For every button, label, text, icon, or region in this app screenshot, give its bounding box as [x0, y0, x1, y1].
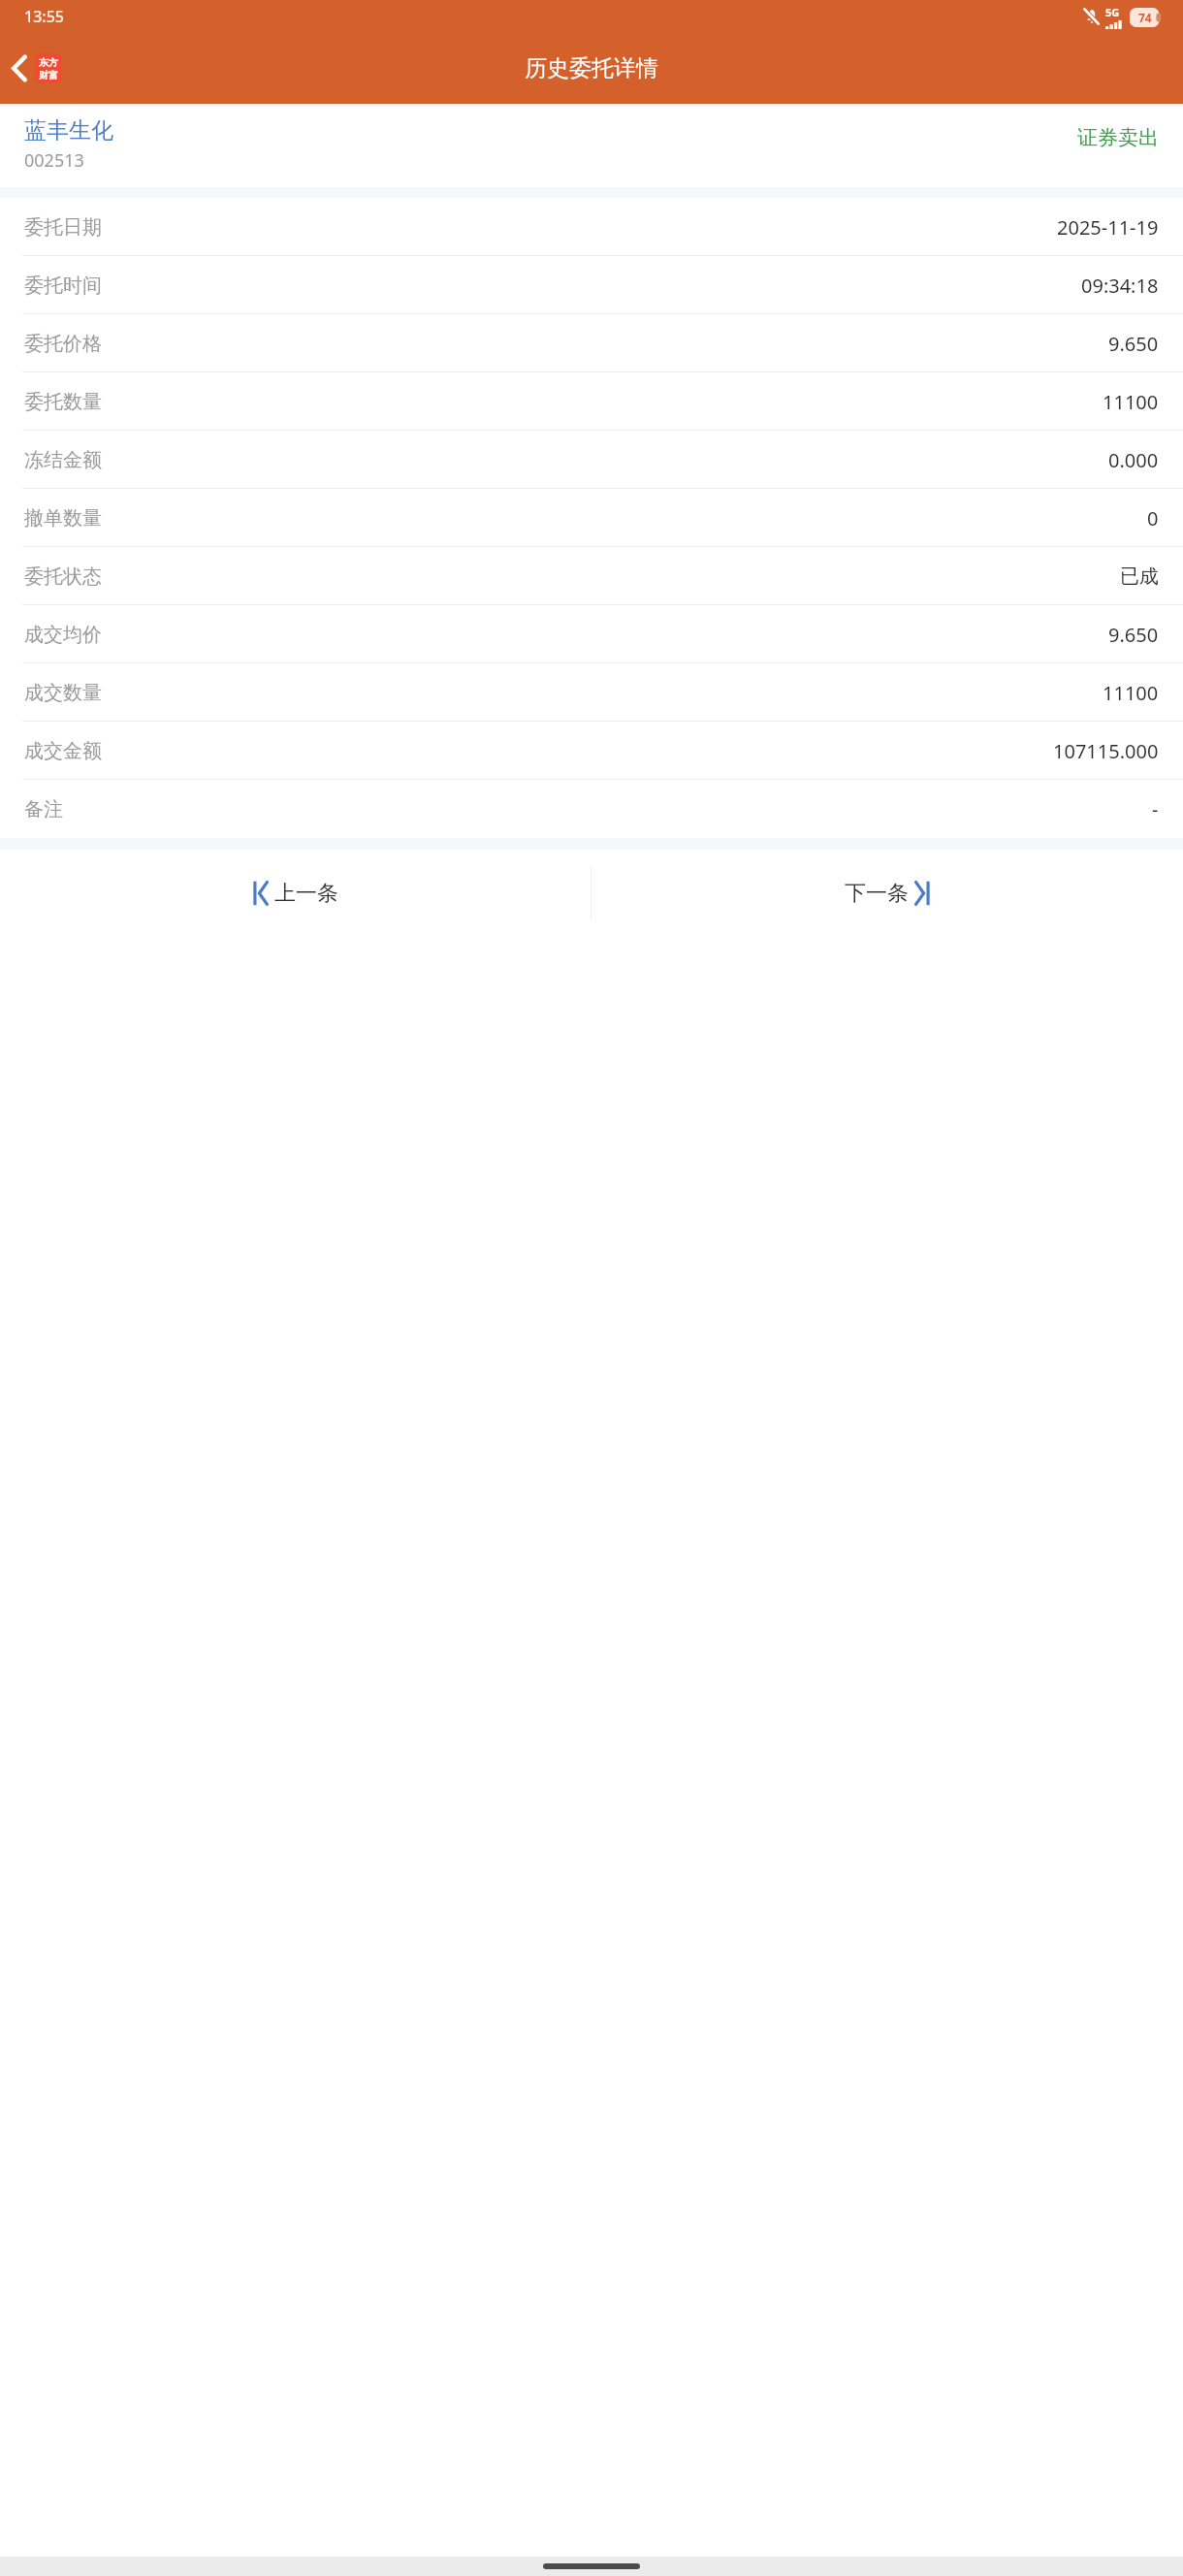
staticText: -	[1152, 796, 1159, 822]
staticText: 9.650	[1108, 331, 1159, 357]
staticText: 11100	[1103, 389, 1159, 415]
button[interactable]: 成交金额	[0, 722, 1183, 780]
button[interactable]: 委托价格	[0, 314, 1183, 372]
staticText: 0	[1147, 505, 1159, 531]
staticText: 成交数量	[24, 681, 102, 705]
staticText: 下一条	[845, 880, 909, 907]
staticText: 蓝丰生化	[24, 116, 113, 145]
staticText: 13:55	[24, 6, 64, 27]
button[interactable]: 委托数量	[0, 372, 1183, 431]
staticText: 107115.000	[1053, 738, 1159, 764]
button[interactable]: 下一条	[591, 866, 1183, 920]
staticText: 财富	[39, 69, 58, 81]
staticText: 上一条	[274, 880, 338, 907]
staticText: 撤单数量	[24, 506, 102, 531]
staticText: 成交均价	[24, 623, 102, 647]
button[interactable]: 上一条	[0, 866, 591, 920]
staticText: 东方	[39, 56, 58, 69]
staticText: 委托日期	[24, 215, 102, 240]
staticText: 历史委托详情	[525, 54, 658, 82]
button[interactable]: 委托时间	[0, 256, 1183, 314]
staticText: 委托时间	[24, 274, 102, 298]
staticText: 74	[1138, 10, 1152, 25]
staticText: 备注	[24, 797, 63, 821]
staticText: 9.650	[1108, 622, 1159, 648]
button[interactable]: Back	[6, 46, 67, 91]
staticText: 委托价格	[24, 332, 102, 356]
staticText: 证券卖出	[1077, 125, 1159, 150]
staticText: 已成	[1120, 564, 1159, 589]
button[interactable]: 备注	[0, 780, 1183, 838]
staticText: 委托状态	[24, 564, 102, 589]
button[interactable]: 成交数量	[0, 663, 1183, 722]
button[interactable]: 成交均价	[0, 605, 1183, 663]
button[interactable]: 冻结金额	[0, 431, 1183, 489]
staticText: 冻结金额	[24, 448, 102, 472]
button[interactable]: 委托状态	[0, 547, 1183, 605]
staticText: 0.000	[1108, 447, 1159, 473]
button[interactable]: 蓝丰生化	[0, 104, 1183, 187]
staticText: 002513	[24, 148, 84, 173]
button[interactable]: 撤单数量	[0, 489, 1183, 547]
staticText: 成交金额	[24, 739, 102, 763]
staticText: 委托数量	[24, 390, 102, 414]
staticText: 09:34:18	[1081, 273, 1159, 299]
staticText: 5G	[1105, 5, 1120, 19]
staticText: 2025-11-19	[1057, 214, 1159, 241]
staticText: 11100	[1103, 680, 1159, 706]
button[interactable]: 委托日期	[0, 198, 1183, 256]
